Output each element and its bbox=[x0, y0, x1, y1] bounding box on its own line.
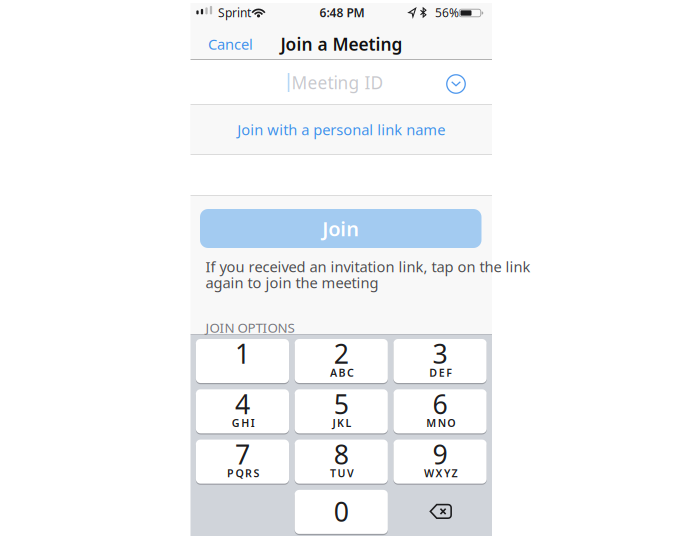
staticText: 6 bbox=[433, 386, 448, 421]
button[interactable]: 8 bbox=[295, 440, 388, 484]
button[interactable]: 6 bbox=[393, 389, 487, 433]
staticText: DEF bbox=[429, 365, 452, 380]
button[interactable]: 2 bbox=[295, 339, 388, 383]
staticText: 2 bbox=[334, 336, 349, 371]
staticText: Sprint bbox=[218, 5, 251, 21]
button[interactable]: Meeting ID bbox=[190, 60, 492, 103]
staticText: WXYZ bbox=[424, 466, 458, 480]
staticText: Join a Meeting bbox=[280, 32, 402, 55]
staticText: 1 bbox=[235, 336, 250, 371]
button[interactable]: 1 bbox=[196, 339, 289, 383]
staticText: 7 bbox=[235, 436, 250, 472]
button[interactable]: Join with a personal link name bbox=[190, 105, 492, 153]
staticText: 3 bbox=[433, 336, 448, 371]
button[interactable]: 5 bbox=[295, 389, 388, 433]
staticText: GHI bbox=[232, 416, 255, 430]
staticText: 8 bbox=[334, 436, 349, 472]
staticText: ABC bbox=[330, 365, 354, 380]
staticText: 9 bbox=[433, 436, 448, 472]
staticText: 4 bbox=[235, 386, 250, 421]
staticText: PQRS bbox=[227, 466, 259, 480]
staticText: 5 bbox=[334, 386, 349, 421]
staticText: MNO bbox=[426, 416, 455, 430]
button[interactable]: Cancel bbox=[208, 34, 253, 54]
staticText: Join with a personal link name bbox=[237, 120, 445, 139]
staticText: again to join the meeting bbox=[205, 273, 378, 292]
staticText: 56% bbox=[435, 5, 459, 21]
button[interactable]: Delete bbox=[430, 503, 452, 519]
staticText: JOIN OPTIONS bbox=[205, 319, 294, 336]
staticText: TUV bbox=[330, 466, 354, 480]
staticText: JKL bbox=[332, 416, 351, 430]
staticText: 0 bbox=[334, 494, 349, 529]
button[interactable]: Recent meetings bbox=[446, 74, 466, 94]
button[interactable]: 9 bbox=[393, 440, 487, 484]
button[interactable]: 7 bbox=[196, 440, 289, 484]
button[interactable]: 4 bbox=[196, 389, 289, 433]
button[interactable]: Join bbox=[200, 209, 481, 248]
button[interactable]: 3 bbox=[393, 339, 487, 383]
staticText: Cancel bbox=[208, 34, 253, 54]
staticText: Meeting ID bbox=[291, 71, 383, 94]
staticText: 6:48 PM bbox=[319, 5, 364, 21]
staticText: Join bbox=[322, 215, 359, 242]
staticText: If you received an invitation link, tap … bbox=[205, 257, 530, 276]
button[interactable]: 0 bbox=[295, 490, 388, 534]
